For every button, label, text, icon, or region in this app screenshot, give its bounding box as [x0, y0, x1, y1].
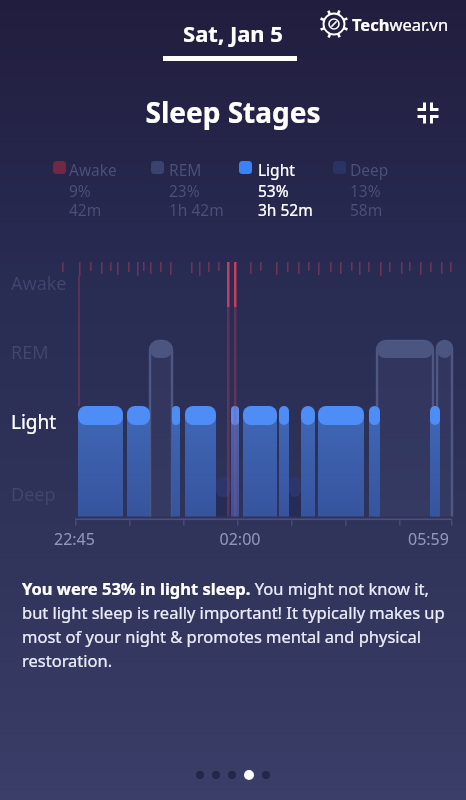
staticText: You were 53% in light sleep. You might n…	[22, 577, 445, 672]
staticText: REM	[11, 340, 49, 365]
staticText: Awake	[69, 159, 117, 180]
staticText: Techwear.vn	[352, 13, 449, 35]
staticText: Light	[11, 409, 57, 435]
staticText: 22:45	[54, 528, 95, 550]
button[interactable]	[239, 161, 252, 174]
button[interactable]	[262, 771, 270, 779]
staticText: 1h 42m	[169, 199, 224, 220]
staticText: Awake	[11, 271, 67, 296]
staticText: 02:00	[200, 528, 280, 550]
button[interactable]	[412, 97, 444, 129]
staticText: Sat, Jan 5	[0, 18, 466, 48]
staticText: 42m	[69, 199, 102, 220]
staticText: 53%	[258, 180, 289, 201]
button[interactable]	[212, 771, 220, 779]
button[interactable]	[228, 771, 236, 779]
staticText: 58m	[350, 199, 383, 220]
staticText: REM	[169, 159, 202, 180]
button[interactable]	[53, 161, 66, 174]
button[interactable]	[151, 161, 164, 174]
button[interactable]	[333, 161, 346, 174]
staticText: 05:59	[408, 528, 449, 550]
button[interactable]: Techwear.vn	[352, 13, 449, 35]
staticText: 3h 52m	[258, 199, 313, 220]
staticText: Light	[258, 159, 295, 180]
staticText: 9%	[69, 180, 91, 201]
staticText: Deep	[11, 482, 56, 507]
button[interactable]	[244, 770, 254, 780]
staticText: 23%	[169, 180, 200, 201]
staticText: 13%	[350, 180, 381, 201]
staticText: Sleep Stages	[0, 93, 466, 131]
staticText: Deep	[350, 159, 389, 180]
button[interactable]	[196, 771, 204, 779]
